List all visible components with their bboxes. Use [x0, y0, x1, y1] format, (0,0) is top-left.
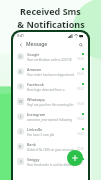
- staticText: Amazon: [27, 67, 42, 72]
- staticText: Message: [26, 41, 48, 48]
- button[interactable]: Back: [17, 41, 24, 48]
- button[interactable]: Search: [77, 41, 84, 48]
- staticText: 10:20: [77, 57, 84, 61]
- button[interactable]: New message: [67, 150, 83, 166]
- staticText: 10:22: [77, 87, 84, 91]
- staticText: L: [20, 129, 22, 134]
- button[interactable]: I: [16, 109, 85, 124]
- staticText: LinkedIn: [27, 127, 43, 132]
- staticText: Your order has been shipped and arrives …: [27, 73, 75, 77]
- button[interactable]: W: [16, 94, 85, 109]
- staticText: A: [19, 69, 22, 74]
- staticText: G: [19, 54, 22, 59]
- staticText: 10:25: [77, 132, 84, 136]
- staticText: 10:26: [77, 147, 84, 151]
- staticText: Received Sms: [20, 5, 81, 17]
- staticText: Google: [27, 52, 40, 57]
- staticText: Swiggy: [27, 157, 40, 162]
- button[interactable]: A: [16, 64, 85, 79]
- staticText: Your food order is out for delivery now: [27, 163, 75, 167]
- button[interactable]: B: [16, 139, 85, 154]
- button[interactable]: L: [16, 124, 85, 139]
- staticText: Whatsapp: [27, 97, 45, 102]
- staticText: someone_new started following you today: [27, 118, 75, 122]
- staticText: Your verification code is 224178 do not …: [27, 58, 75, 62]
- button[interactable]: S: [16, 154, 85, 169]
- staticText: S: [20, 159, 22, 164]
- staticText: 10:27: [77, 162, 84, 166]
- staticText: I: [20, 114, 22, 119]
- staticText: 10:23: [77, 102, 84, 106]
- staticText: & Notifications: [17, 18, 85, 30]
- staticText: Instagram: [27, 112, 46, 117]
- staticText: Debit of Rs.1200 on your account xx4521: [27, 148, 75, 152]
- staticText: 10:21: [77, 72, 84, 76]
- staticText: Hey! are you free this evening for a cal…: [27, 103, 75, 107]
- staticText: B: [19, 144, 22, 149]
- staticText: Bank: [27, 142, 36, 147]
- button[interactable]: F: [16, 79, 85, 94]
- staticText: You have 3 new job recommendations now: [27, 133, 75, 137]
- staticText: 9:41: [17, 33, 24, 38]
- staticText: New login detected from a Windows device: [27, 88, 75, 92]
- button[interactable]: G: [16, 49, 85, 64]
- staticText: W: [19, 99, 23, 104]
- staticText: Facebook: [27, 82, 44, 87]
- staticText: 10:24: [77, 117, 84, 121]
- staticText: F: [20, 84, 22, 89]
